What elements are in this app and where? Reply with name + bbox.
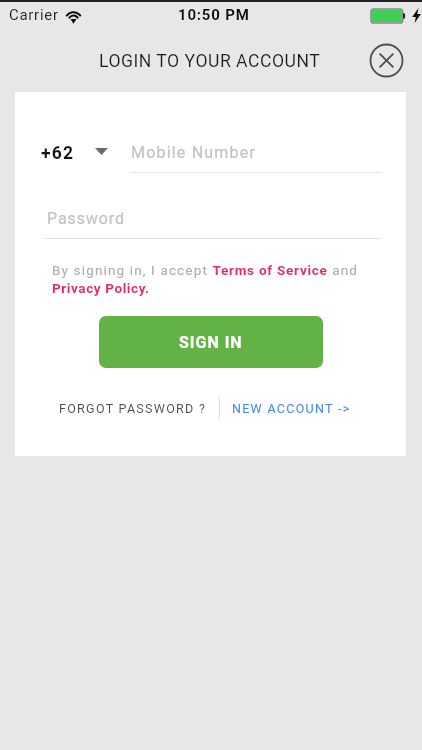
- staticText: +62: [41, 143, 75, 164]
- staticText: Carrier: [9, 6, 59, 24]
- staticText: By signing in, I accept Terms of Service…: [52, 262, 372, 296]
- staticText: FORGOT PASSWORD ?: [59, 401, 207, 416]
- button[interactable]: FORGOT PASSWORD ?: [51, 394, 215, 423]
- button[interactable]: Close: [368, 42, 405, 79]
- button[interactable]: SIGN IN: [99, 316, 323, 368]
- staticText: LOGIN TO YOUR ACCOUNT: [99, 51, 321, 72]
- staticText: NEW ACCOUNT ->: [232, 401, 351, 416]
- staticText: Mobile Number: [131, 143, 257, 162]
- staticText: Password: [47, 209, 125, 228]
- staticText: SIGN IN: [179, 333, 243, 352]
- button[interactable]: NEW ACCOUNT ->: [224, 394, 359, 423]
- staticText: 10:50 PM: [178, 6, 250, 24]
